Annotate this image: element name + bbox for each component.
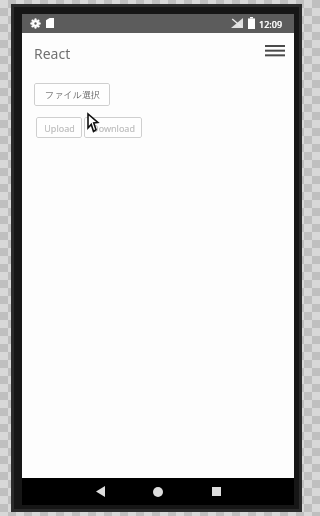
button[interactable]: Recent apps — [196, 478, 236, 505]
staticText: Download — [92, 122, 135, 134]
button[interactable]: Menu — [262, 38, 288, 62]
button[interactable]: ファイル選択 — [34, 83, 110, 106]
staticText: React — [34, 44, 71, 63]
staticText: 12:09 — [259, 18, 283, 30]
staticText: ファイル選択 — [45, 89, 100, 100]
button[interactable]: Download — [84, 117, 142, 138]
staticText: Upload — [44, 122, 75, 134]
button[interactable]: Back — [80, 478, 120, 505]
button[interactable]: Home — [138, 478, 178, 505]
button[interactable]: Upload — [36, 117, 82, 138]
